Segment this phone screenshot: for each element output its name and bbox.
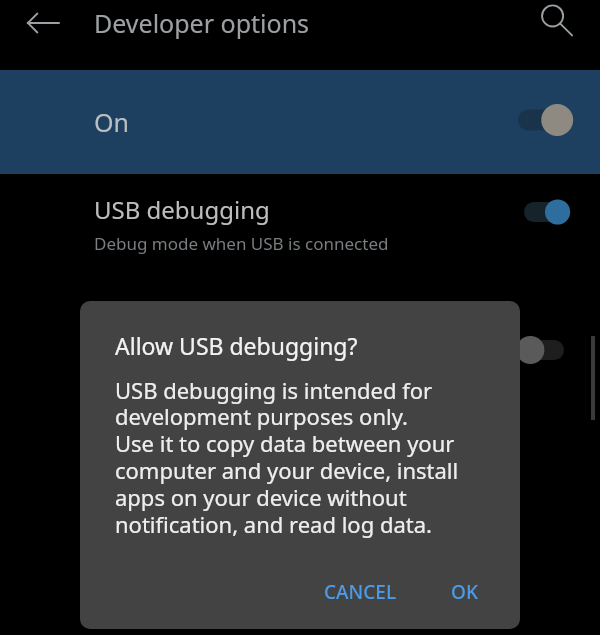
staticText: CANCEL <box>324 579 397 605</box>
button[interactable]: CANCEL <box>310 569 411 615</box>
button[interactable]: Back <box>14 0 72 46</box>
staticText: Debug mode when USB is connected <box>94 232 389 255</box>
staticText: Allow USB debugging? <box>115 330 358 361</box>
staticText: USB debugging <box>94 193 270 226</box>
button[interactable]: OK <box>437 569 492 615</box>
staticText: On <box>94 105 129 139</box>
staticText: OK <box>451 579 478 605</box>
button[interactable]: Search <box>528 0 584 48</box>
staticText: Developer options <box>94 6 310 40</box>
button[interactable]: USB debugging <box>0 174 600 282</box>
button[interactable]: On <box>0 70 600 174</box>
staticText: USB debugging is intended for developmen… <box>115 375 459 540</box>
